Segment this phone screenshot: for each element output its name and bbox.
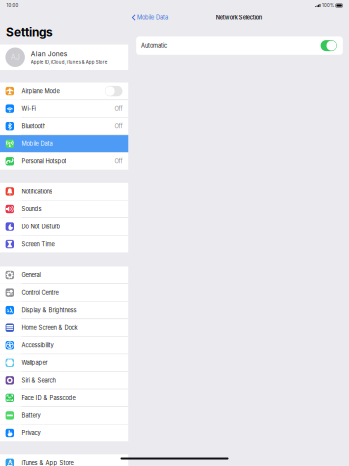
staticText: Mobile Data bbox=[137, 14, 168, 21]
staticText: Wi-Fi bbox=[21, 105, 35, 112]
button[interactable]: Do Not Disturb bbox=[0, 218, 128, 235]
button[interactable]: Screen Time bbox=[0, 235, 128, 253]
staticText: Off bbox=[114, 158, 122, 165]
staticText: Airplane Mode bbox=[21, 88, 59, 94]
button[interactable]: AJ bbox=[0, 44, 128, 70]
staticText: Mobile Data bbox=[21, 140, 52, 147]
staticText: AJ bbox=[11, 53, 20, 62]
staticText: 10:00 bbox=[6, 3, 18, 8]
staticText: Display & Brightness bbox=[21, 307, 76, 314]
button[interactable]: Privacy bbox=[0, 424, 128, 441]
staticText: Off bbox=[114, 105, 122, 112]
staticText: Do Not Disturb bbox=[21, 223, 60, 230]
button[interactable]: Wi-Fi bbox=[0, 100, 128, 117]
staticText: Home Screen & Dock bbox=[21, 324, 77, 331]
button[interactable]: Accessibility bbox=[0, 337, 128, 354]
staticText: iTunes & App Store bbox=[21, 459, 73, 466]
staticText: Wallpaper bbox=[21, 359, 47, 366]
button[interactable]: Home Screen & Dock bbox=[0, 319, 128, 336]
button[interactable]: Mobile Data bbox=[128, 11, 168, 24]
staticText: General bbox=[21, 272, 40, 278]
button[interactable]: Sounds bbox=[0, 200, 128, 217]
staticText: Face ID & Passcode bbox=[21, 394, 75, 401]
staticText: Privacy bbox=[21, 429, 40, 436]
staticText: Apple ID, iCloud, iTunes & App Store bbox=[31, 59, 108, 65]
staticText: Network Selection bbox=[216, 14, 262, 21]
button[interactable]: Mobile Data bbox=[0, 135, 128, 152]
staticText: Bluetooth bbox=[21, 123, 45, 130]
button[interactable]: Face ID & Passcode bbox=[0, 389, 128, 406]
staticText: Sounds bbox=[21, 205, 41, 212]
button[interactable]: iTunes & App Store bbox=[0, 454, 128, 466]
button[interactable]: Notifications bbox=[0, 183, 128, 200]
button[interactable]: Wallpaper bbox=[0, 354, 128, 371]
button[interactable]: Bluetooth bbox=[0, 118, 128, 135]
staticText: Off bbox=[114, 123, 122, 130]
staticText: Settings bbox=[6, 25, 53, 39]
button[interactable]: Personal Hotspot bbox=[0, 153, 128, 170]
button[interactable]: Control Centre bbox=[0, 284, 128, 301]
staticText: Siri & Search bbox=[21, 377, 55, 384]
button[interactable]: Battery bbox=[0, 407, 128, 424]
staticText: Automatic bbox=[141, 42, 167, 49]
staticText: Accessibility bbox=[21, 342, 53, 349]
staticText: Personal Hotspot bbox=[21, 158, 66, 165]
button[interactable]: Siri & Search bbox=[0, 372, 128, 389]
button[interactable]: Display & Brightness bbox=[0, 301, 128, 319]
button[interactable]: Automatic bbox=[136, 36, 343, 55]
staticText: Alan Jones bbox=[31, 50, 68, 58]
button[interactable]: General bbox=[0, 266, 128, 283]
staticText: Notifications bbox=[21, 188, 52, 195]
button[interactable]: Airplane Mode bbox=[0, 82, 128, 100]
staticText: 100% bbox=[322, 3, 334, 8]
staticText: Screen Time bbox=[21, 241, 54, 247]
staticText: Control Centre bbox=[21, 289, 58, 296]
staticText: Battery bbox=[21, 412, 40, 419]
